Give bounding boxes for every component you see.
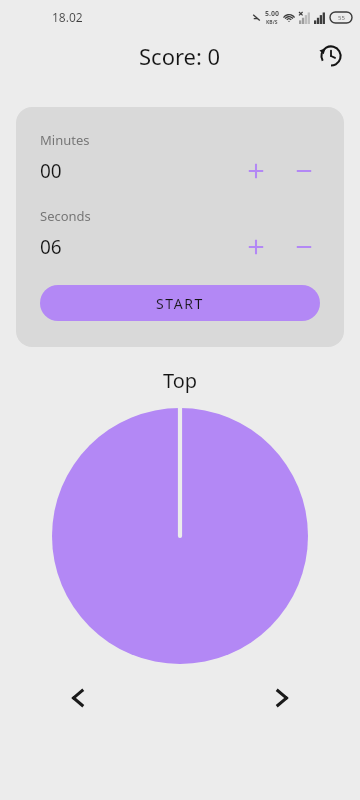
staticText: 5.00 xyxy=(265,9,279,19)
button[interactable]: Previous xyxy=(56,676,100,720)
staticText: START xyxy=(156,294,204,313)
button[interactable]: Next xyxy=(260,676,304,720)
button[interactable]: START xyxy=(40,285,320,321)
staticText: 55 xyxy=(338,14,345,22)
staticText: 06 xyxy=(40,234,62,260)
button[interactable]: History xyxy=(311,36,351,76)
staticText: 00 xyxy=(40,158,62,184)
staticText: Score: 0 xyxy=(139,41,221,71)
staticText: Minutes xyxy=(40,131,90,149)
staticText: 18.02 xyxy=(52,9,83,25)
staticText: KB/S xyxy=(266,19,278,26)
button[interactable]: Decrease xyxy=(288,155,320,187)
button[interactable]: Increase xyxy=(240,155,272,187)
staticText: Seconds xyxy=(40,207,91,225)
staticText: Top xyxy=(0,367,360,394)
button[interactable]: Increase xyxy=(240,231,272,263)
button[interactable]: Decrease xyxy=(288,231,320,263)
